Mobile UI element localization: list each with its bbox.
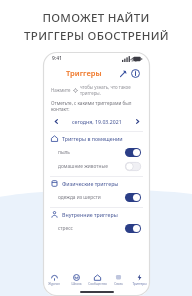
staticText: чтобы узнать, что такое триггеры. [80, 84, 142, 96]
button[interactable]: Сообщество [87, 271, 108, 288]
button[interactable]: Связь [108, 271, 129, 288]
button[interactable]: Школа [65, 271, 87, 288]
button[interactable]: Триггеры в помещении [43, 132, 150, 145]
button[interactable]: Триггеры [66, 68, 102, 78]
staticText: Триггеры [66, 68, 102, 78]
button[interactable]: Предыдущий день [51, 116, 61, 126]
staticText: Триггеры в помещении [62, 135, 123, 142]
button[interactable]: Физические триггеры [43, 177, 150, 190]
staticText: пыль [58, 149, 70, 156]
button[interactable]: стресс [43, 221, 150, 235]
staticText: Сообщество [88, 282, 107, 286]
button[interactable]: пыль [43, 145, 150, 159]
button[interactable]: сегодня, 19.03.2021 [64, 118, 129, 125]
staticText: Школа [71, 282, 82, 286]
button[interactable]: Внутренние триггеры [43, 208, 150, 221]
button[interactable]: Журнал [43, 271, 65, 288]
staticText: одежда из шерсти [58, 194, 101, 201]
staticText: Нажмите [51, 87, 71, 93]
staticText: Журнал [48, 282, 60, 286]
staticText: ТРИГГЕРЫ ОБОСТРЕНИЙ [24, 28, 169, 44]
staticText: Физические триггеры [62, 180, 119, 187]
staticText: сегодня, 19.03.2021 [72, 118, 122, 125]
button[interactable]: Следующий день [132, 116, 142, 126]
staticText: Связь [114, 282, 123, 286]
button[interactable]: одежда из шерсти [43, 190, 150, 204]
button[interactable]: Информация [130, 68, 141, 79]
button[interactable]: домашние животные [43, 159, 150, 173]
button[interactable]: Редактировать [117, 68, 128, 79]
staticText: Внутренние триггеры [62, 211, 118, 218]
staticText: 9:41 [52, 55, 62, 62]
staticText: Триггеры [132, 282, 147, 286]
staticText: домашние животные [58, 163, 108, 170]
staticText: ПОМОЖЕТ НАЙТИ [42, 10, 150, 26]
staticText: стресс [58, 225, 73, 232]
staticText: Отметьте, с какими триггерами был контак… [51, 100, 142, 112]
button[interactable]: Триггеры [129, 271, 150, 288]
